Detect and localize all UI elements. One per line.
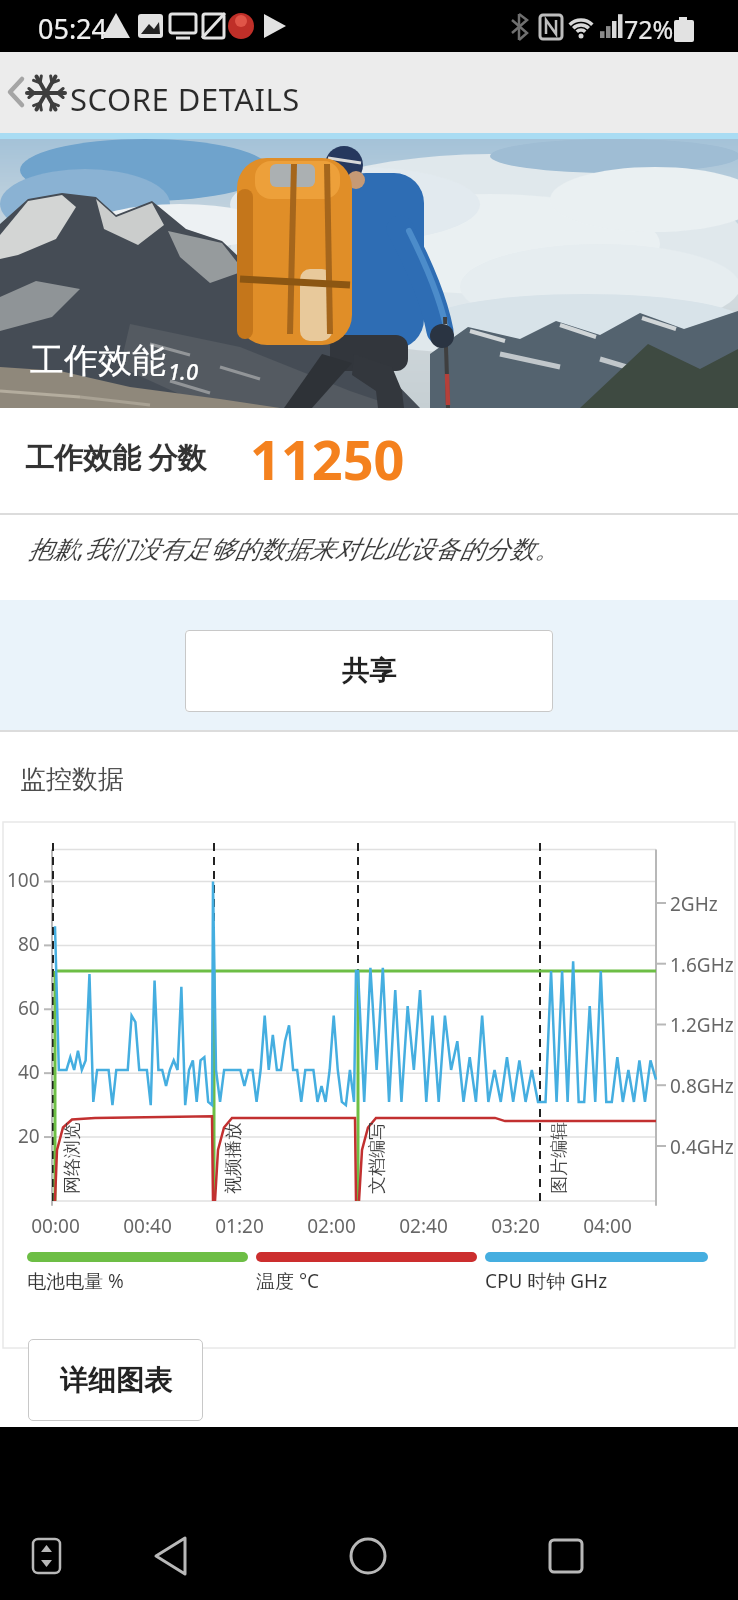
staticText: 视频播放 [222, 1122, 245, 1194]
staticText: 监控数据 [20, 763, 124, 796]
staticText: 04:00 [583, 1213, 632, 1239]
staticText: 100 [7, 867, 40, 893]
staticText: 文档编写 [366, 1122, 389, 1194]
staticText: 40 [18, 1059, 40, 1085]
staticText: 05:24 [38, 10, 108, 47]
staticText: 电池电量 % [27, 1268, 124, 1294]
staticText: 80 [18, 931, 40, 957]
staticText: 72% [624, 12, 674, 46]
button[interactable]: 共享 [185, 630, 553, 712]
staticText: 工作效能 分数 [25, 437, 207, 477]
staticText: 60 [18, 995, 40, 1021]
staticText: 02:40 [399, 1213, 448, 1239]
staticText: 02:00 [307, 1213, 356, 1239]
staticText: 图片编辑 [548, 1122, 571, 1194]
staticText: 温度 °C [256, 1268, 320, 1294]
staticText: 抱歉,我们没有足够的数据来对比此设备的分数。 [28, 531, 560, 565]
staticText: 11250 [250, 422, 405, 496]
button[interactable] [536, 1527, 596, 1587]
staticText: CPU 时钟 GHz [485, 1268, 608, 1294]
button[interactable] [0, 52, 66, 133]
staticText: 网络浏览 [61, 1122, 84, 1194]
staticText: SCORE DETAILS [70, 78, 300, 120]
staticText: 1.6GHz [670, 952, 734, 978]
staticText: 共享 [342, 654, 396, 688]
button[interactable] [142, 1527, 202, 1587]
staticText: 01:20 [215, 1213, 264, 1239]
staticText: 0.8GHz [670, 1073, 734, 1099]
staticText: 03:20 [491, 1213, 540, 1239]
button[interactable]: 详细图表 [28, 1339, 203, 1421]
staticText: 1.2GHz [670, 1012, 734, 1038]
button[interactable] [20, 1539, 76, 1595]
button[interactable] [338, 1527, 398, 1587]
staticText: 20 [18, 1123, 40, 1149]
staticText: 工作效能 [30, 339, 166, 382]
staticText: 0.4GHz [670, 1134, 734, 1160]
staticText: 00:00 [31, 1213, 80, 1239]
staticText: 00:40 [123, 1213, 172, 1239]
staticText: 2GHz [670, 891, 718, 917]
staticText: 详细图表 [60, 1363, 172, 1398]
staticText: 1.0 [168, 356, 199, 386]
